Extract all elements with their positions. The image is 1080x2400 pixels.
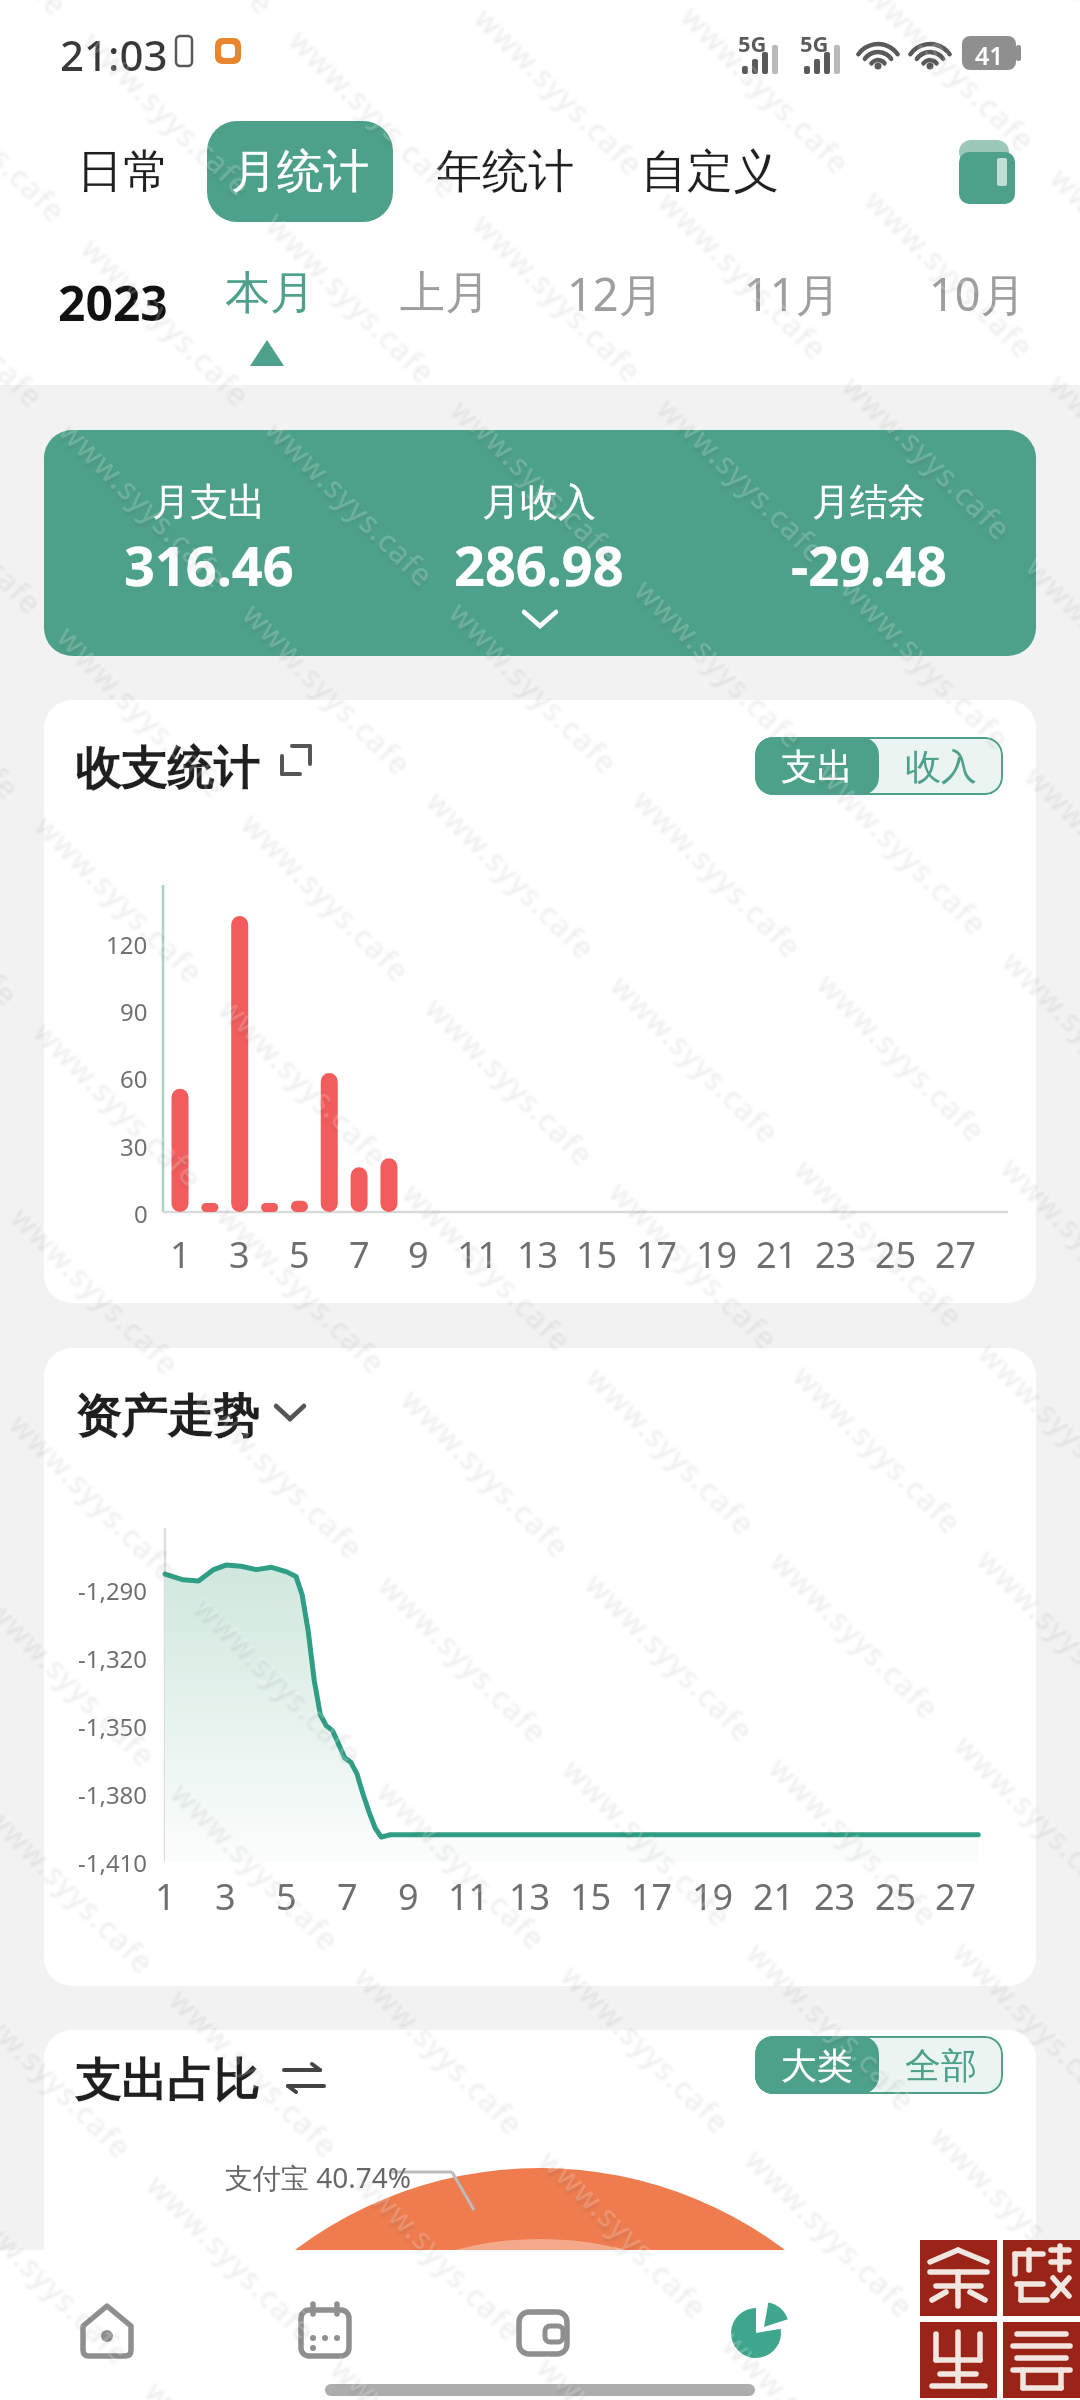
- staticText: www.syys.cafe www.syys.cafe www.syys.caf…: [0, 0, 1080, 2400]
- staticText: 11月: [744, 263, 841, 324]
- staticText: www.syys.cafe www.syys.cafe www.syys.caf…: [0, 0, 1080, 1964]
- staticText: 23: [815, 1230, 857, 1279]
- button[interactable]: [79, 2302, 135, 2360]
- staticText: www.syys.cafe www.syys.cafe www.syys.caf…: [0, 0, 1080, 2400]
- staticText: 286.98: [454, 528, 624, 602]
- staticText: 月支出: [152, 478, 266, 526]
- staticText: 5: [289, 1230, 310, 1279]
- staticText: 资产走势: [75, 1388, 259, 1446]
- staticText: www.syys.cafe www.syys.cafe www.syys.caf…: [0, 0, 1080, 2400]
- button[interactable]: [955, 138, 1019, 208]
- button[interactable]: 上月: [390, 258, 500, 328]
- staticText: 年统计: [436, 143, 574, 201]
- staticText: -1,290: [78, 1574, 148, 1607]
- button[interactable]: [515, 2302, 571, 2360]
- staticText: -1,410: [78, 1846, 148, 1879]
- staticText: 月统计: [231, 143, 369, 201]
- button[interactable]: 10月: [922, 258, 1032, 328]
- staticText: 25: [875, 1230, 917, 1279]
- button[interactable]: 大类: [755, 2036, 879, 2094]
- staticText: 25: [875, 1872, 917, 1921]
- staticText: www.syys.cafe www.syys.cafe www.syys.caf…: [0, 760, 980, 2400]
- staticText: www.syys.cafe www.syys.cafe www.syys.caf…: [0, 0, 1080, 2400]
- staticText: 大类: [781, 2043, 853, 2088]
- staticText: -29.48: [791, 528, 948, 602]
- staticText: 9: [408, 1230, 429, 1279]
- button[interactable]: 年统计: [425, 121, 585, 222]
- staticText: www.syys.cafe www.syys.cafe www.syys.caf…: [0, 0, 1080, 2379]
- staticText: 0: [134, 1197, 148, 1230]
- staticText: 41: [975, 38, 1004, 72]
- button[interactable]: 12月: [560, 258, 670, 328]
- staticText: www.syys.cafe www.syys.cafe www.syys.caf…: [0, 0, 1080, 2171]
- staticText: www.syys.cafe www.syys.cafe www.syys.caf…: [0, 136, 1080, 2400]
- staticText: 60: [120, 1062, 148, 1095]
- staticText: 27: [935, 1872, 977, 1921]
- staticText: 支出占比: [75, 2052, 259, 2110]
- staticText: 本月: [225, 265, 315, 322]
- button[interactable]: 本月: [210, 258, 330, 328]
- staticText: www.syys.cafe www.syys.cafe www.syys.caf…: [0, 138, 1080, 2400]
- staticText: 9: [398, 1872, 419, 1921]
- staticText: 17: [631, 1872, 673, 1921]
- staticText: 90: [120, 995, 148, 1028]
- staticText: 13: [509, 1872, 551, 1921]
- staticText: 7: [337, 1872, 358, 1921]
- button[interactable]: 月支出: [44, 430, 1036, 656]
- staticText: 5G: [738, 28, 767, 58]
- staticText: 21: [756, 1230, 798, 1279]
- staticText: www.syys.cafe www.syys.cafe www.syys.caf…: [0, 0, 1080, 2172]
- staticText: 1: [170, 1230, 191, 1279]
- staticText: 17: [636, 1230, 678, 1279]
- staticText: 7: [349, 1230, 370, 1279]
- button[interactable]: 日常: [60, 121, 185, 222]
- staticText: 12月: [567, 263, 664, 324]
- staticText: www.syys.cafe www.syys.cafe www.syys.caf…: [0, 554, 981, 2400]
- button[interactable]: [729, 2302, 785, 2360]
- button[interactable]: 11月: [737, 258, 847, 328]
- staticText: 11: [457, 1230, 499, 1279]
- staticText: 30: [120, 1130, 148, 1163]
- staticText: www.syys.cafe www.syys.cafe www.syys.caf…: [0, 0, 1080, 1755]
- staticText: 5: [276, 1872, 297, 1921]
- staticText: www.syys.cafe www.syys.cafe www.syys.caf…: [0, 762, 773, 2400]
- staticText: www.syys.cafe www.syys.cafe www.syys.caf…: [0, 344, 1080, 2400]
- staticText: 27: [935, 1230, 977, 1279]
- staticText: 19: [696, 1230, 738, 1279]
- staticText: 3: [229, 1230, 250, 1279]
- staticText: -1,380: [78, 1778, 148, 1811]
- button[interactable]: 月统计: [207, 121, 393, 222]
- button[interactable]: [297, 2302, 353, 2360]
- staticText: 21:03: [60, 26, 168, 83]
- button[interactable]: 支出: [755, 737, 879, 795]
- staticText: www.syys.cafe www.syys.cafe www.syys.caf…: [0, 0, 1080, 1549]
- staticText: 2023: [58, 270, 168, 335]
- staticText: www.syys.cafe www.syys.cafe www.syys.caf…: [0, 346, 1080, 2400]
- staticText: 1: [155, 1872, 176, 1921]
- staticText: 支出: [781, 744, 853, 789]
- staticText: 15: [576, 1230, 618, 1279]
- staticText: 19: [692, 1872, 734, 1921]
- staticText: 11: [448, 1872, 490, 1921]
- staticText: 上月: [400, 265, 490, 322]
- staticText: www.syys.cafe www.syys.cafe www.syys.caf…: [0, 0, 1080, 2400]
- staticText: 10月: [929, 263, 1026, 324]
- button[interactable]: 全部: [879, 2036, 1003, 2094]
- staticText: www.syys.cafe www.syys.cafe www.syys.caf…: [0, 552, 1080, 2400]
- staticText: 15: [570, 1872, 612, 1921]
- staticText: -1,350: [78, 1710, 148, 1743]
- button[interactable]: 自定义: [630, 121, 790, 222]
- staticText: www.syys.cafe www.syys.cafe www.syys.caf…: [193, 0, 1080, 1547]
- staticText: 日常: [77, 143, 169, 201]
- staticText: www.syys.cafe www.syys.cafe www.syys.caf…: [0, 0, 1080, 1963]
- staticText: 21: [753, 1872, 795, 1921]
- staticText: 120: [106, 928, 148, 961]
- button[interactable]: 收入: [879, 737, 1003, 795]
- staticText: 3: [215, 1872, 236, 1921]
- staticText: 316.46: [124, 528, 294, 602]
- staticText: www.syys.cafe www.syys.cafe www.syys.caf…: [0, 0, 1080, 2400]
- staticText: 月收入: [482, 478, 596, 526]
- staticText: 5G: [800, 28, 829, 58]
- staticText: 13: [517, 1230, 559, 1279]
- staticText: 收支统计: [75, 740, 259, 798]
